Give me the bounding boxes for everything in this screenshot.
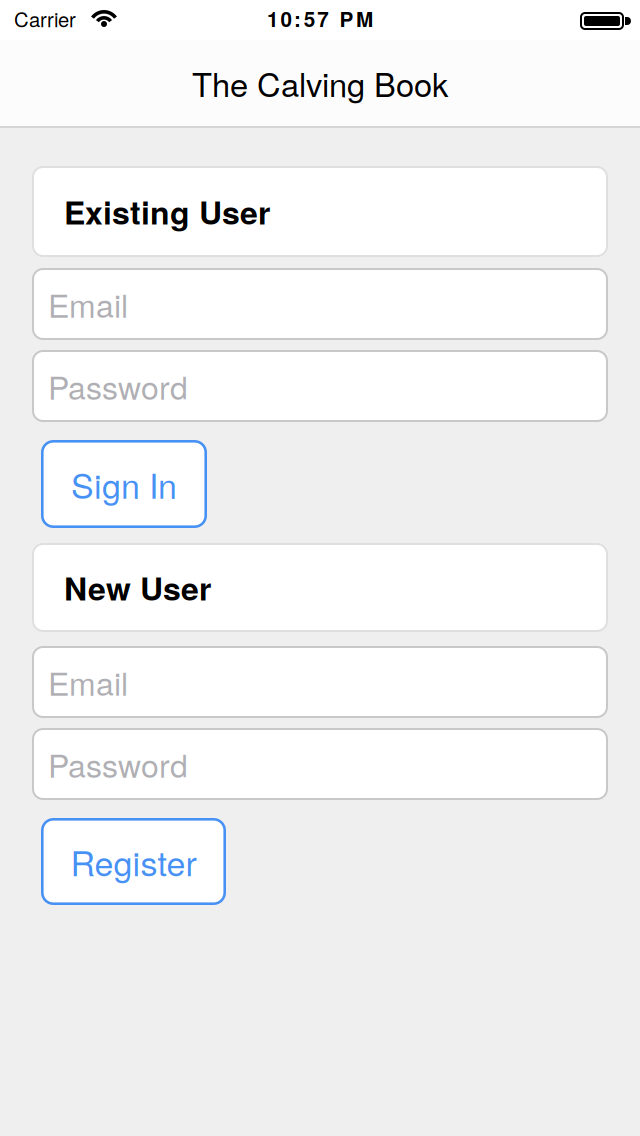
staticText: Password [48, 363, 188, 409]
staticText: Email [48, 281, 128, 327]
button[interactable]: Sign In [41, 440, 207, 528]
staticText: New User [64, 565, 211, 610]
staticText: The Calving Book [192, 60, 448, 106]
staticText: Password [48, 741, 188, 787]
button[interactable]: Email [32, 646, 608, 718]
button[interactable]: Register [41, 818, 226, 905]
button[interactable]: Password [32, 350, 608, 422]
button[interactable]: Email [32, 268, 608, 340]
staticText: Email [48, 659, 128, 705]
staticText: Existing User [64, 189, 270, 234]
staticText: 10:57 PM [267, 4, 373, 33]
staticText: Register [70, 837, 196, 886]
staticText: Carrier [14, 4, 76, 33]
staticText: Sign In [71, 460, 177, 508]
button[interactable]: Password [32, 728, 608, 800]
